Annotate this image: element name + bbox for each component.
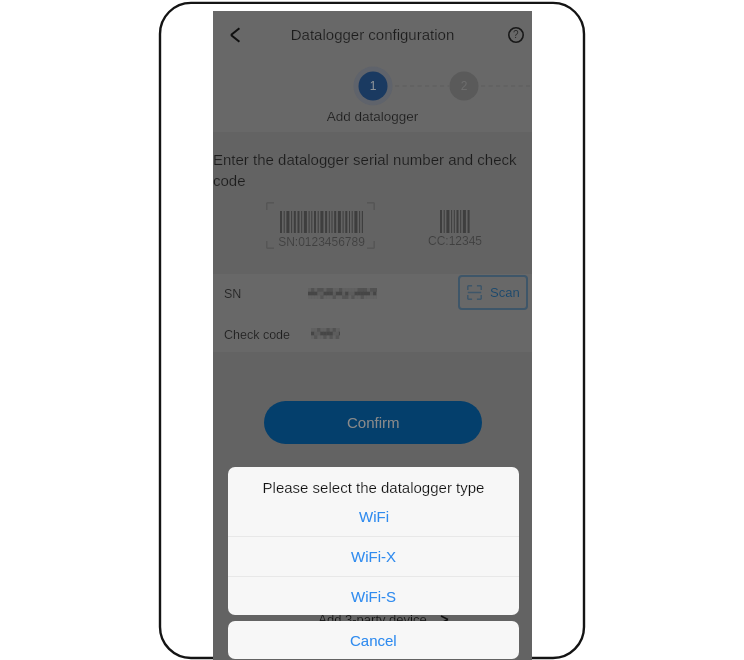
staticText: WiFi-S: [351, 588, 396, 605]
staticText: 1: [352, 79, 394, 92]
button[interactable]: Cancel: [228, 621, 519, 659]
staticText: Confirm: [347, 414, 400, 431]
button[interactable]: WiFi-S: [228, 577, 519, 615]
button[interactable]: Back: [218, 18, 251, 51]
button[interactable]: WiFi-X: [228, 537, 519, 576]
staticText: Datalogger configuration: [213, 26, 532, 43]
staticText: Enter the datalogger serial number and c…: [213, 151, 523, 189]
button[interactable]: Help: [500, 19, 531, 50]
button[interactable]: Scan: [458, 275, 528, 310]
button[interactable]: WiFi: [228, 499, 519, 533]
staticText: WiFi-X: [351, 548, 396, 565]
staticText: SN:0123456789: [275, 235, 368, 248]
staticText: Please select the datalogger type: [228, 479, 519, 496]
staticText: Check code: [224, 328, 291, 342]
staticText: Scan: [490, 285, 520, 300]
staticText: Add datalogger: [213, 109, 532, 124]
staticText: 2: [443, 79, 485, 92]
staticText: Cancel: [350, 632, 397, 649]
button[interactable]: Confirm: [264, 401, 482, 444]
staticText: WiFi: [359, 508, 389, 525]
staticText: SN: [224, 287, 242, 301]
staticText: ?: [513, 29, 519, 40]
staticText: CC:12345: [425, 234, 485, 247]
staticText: Add 3-party device: [213, 612, 532, 627]
